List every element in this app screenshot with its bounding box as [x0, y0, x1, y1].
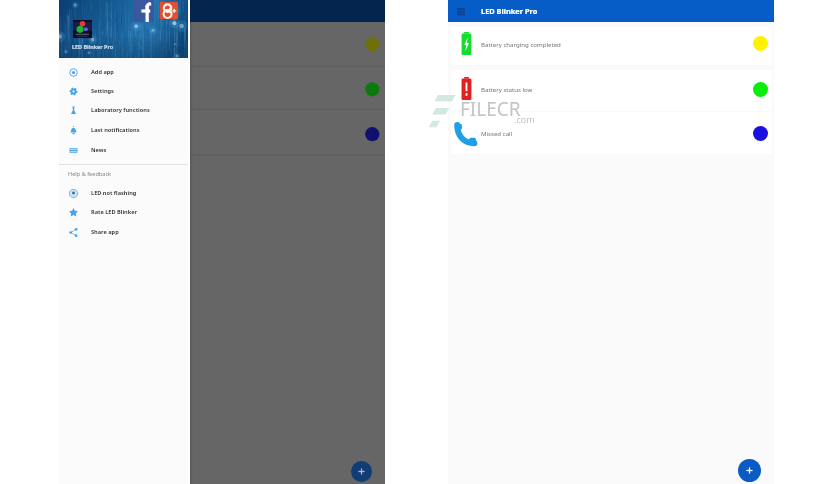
button[interactable]: Google Plus — [160, 2, 178, 19]
staticText: Laboratory functions — [91, 106, 150, 114]
button[interactable]: Add app — [59, 62, 190, 82]
button[interactable]: Open navigation drawer — [454, 4, 468, 18]
button[interactable]: Missed call — [451, 112, 772, 154]
staticText: Battery charging completed — [481, 40, 561, 48]
staticText: Battery status low — [481, 85, 533, 93]
staticText: Help & feedback — [68, 170, 112, 178]
button[interactable]: Last notifications — [59, 120, 190, 140]
button[interactable]: Add — [351, 461, 372, 482]
staticText: Missed call — [481, 129, 513, 137]
staticText: Share app — [91, 228, 119, 236]
staticText: Rate LED Blinker — [91, 208, 138, 216]
staticText: LED not flashing — [91, 189, 137, 197]
staticText: LED Blinker Pro — [481, 6, 538, 16]
staticText: Last notifications — [91, 126, 140, 134]
button[interactable]: Add — [738, 459, 761, 482]
button[interactable]: Battery charging completed — [451, 27, 772, 65]
staticText: FILECR — [460, 96, 521, 122]
button[interactable]: LED not flashing — [59, 183, 190, 203]
staticText: Settings — [91, 87, 114, 95]
button[interactable]: Laboratory functions — [59, 100, 190, 120]
button[interactable]: Share app — [59, 222, 190, 242]
button[interactable]: Battery status low — [451, 70, 772, 111]
staticText: Add app — [91, 68, 114, 76]
button[interactable]: Settings — [59, 81, 190, 101]
staticText: .com — [514, 113, 535, 125]
button[interactable]: Rate LED Blinker — [59, 202, 190, 222]
staticText: LED Blinker Pro — [72, 43, 114, 50]
button[interactable]: Facebook — [134, 0, 154, 22]
button[interactable]: News — [59, 140, 190, 160]
staticText: News — [91, 146, 107, 154]
